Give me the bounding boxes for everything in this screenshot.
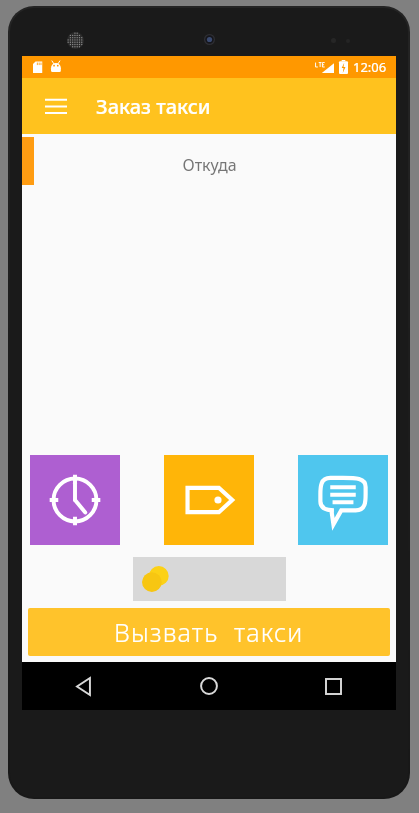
button[interactable]: Стоимость поездки bbox=[133, 557, 286, 601]
button[interactable]: Вызвать такси bbox=[28, 608, 390, 656]
button[interactable]: Домой bbox=[146, 662, 271, 710]
button[interactable]: Последние приложения bbox=[271, 662, 396, 710]
button[interactable]: Время заказа bbox=[30, 455, 120, 545]
staticText: Вызвать такси bbox=[114, 615, 304, 649]
staticText: Откуда bbox=[182, 154, 237, 176]
button[interactable]: Комментарий bbox=[298, 455, 388, 545]
button[interactable]: Назад bbox=[22, 662, 146, 710]
button[interactable]: Тариф bbox=[164, 455, 254, 545]
button[interactable]: Открыть меню bbox=[34, 84, 78, 128]
staticText: 12:06 bbox=[353, 58, 387, 76]
staticText: Заказ такси bbox=[96, 93, 211, 120]
